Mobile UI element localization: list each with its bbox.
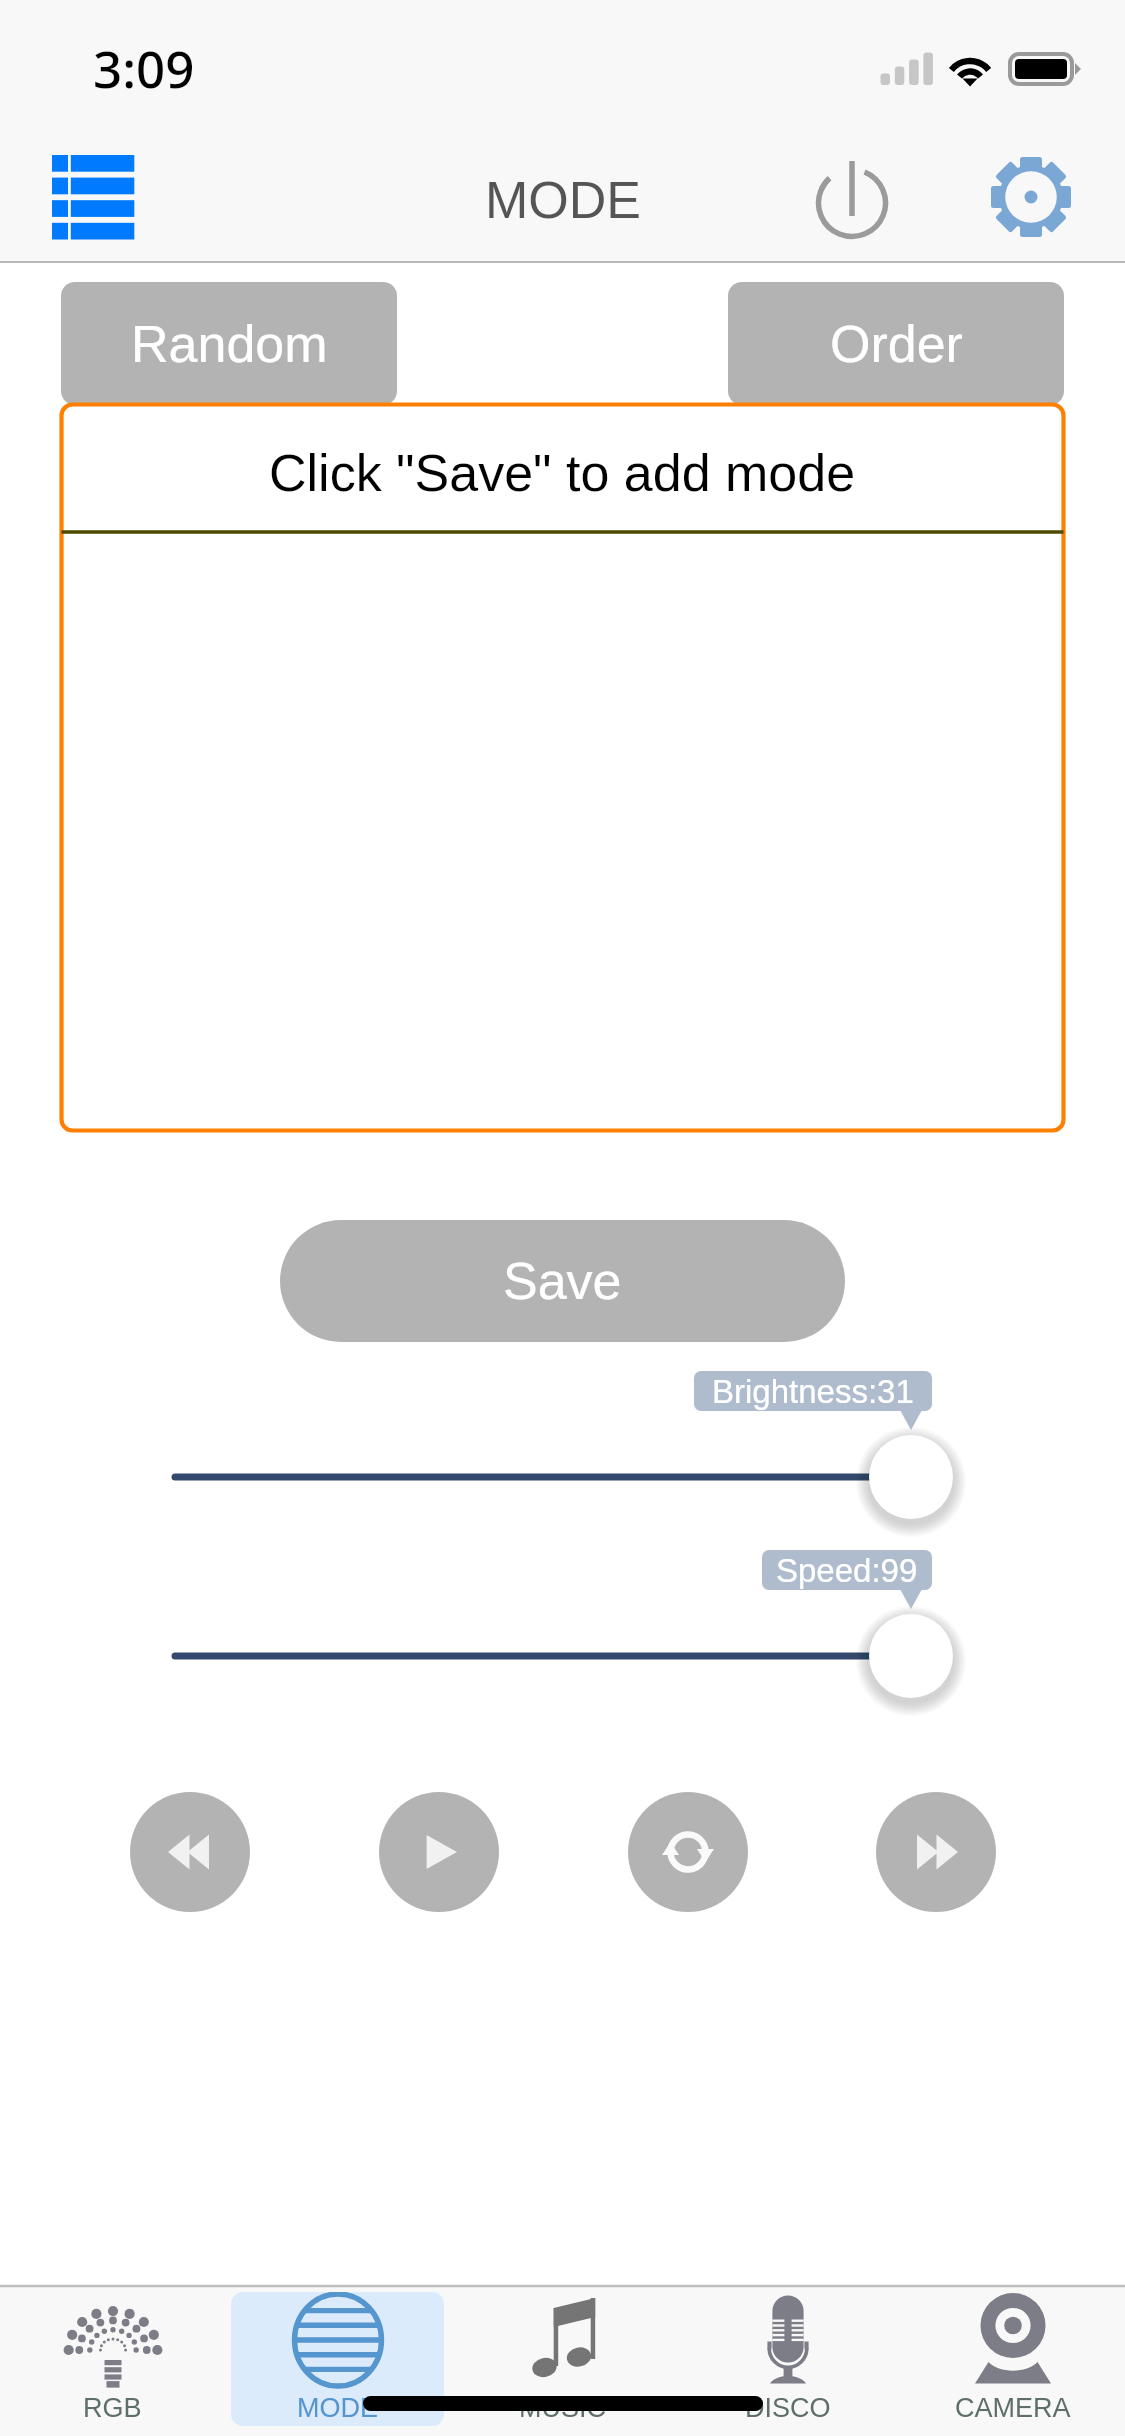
button[interactable]: Next: [876, 1792, 996, 1912]
staticText: CAMERA: [955, 2393, 1071, 2423]
button[interactable]: Play: [379, 1792, 499, 1912]
button[interactable]: CAMERA: [906, 2292, 1119, 2426]
button[interactable]: Settings: [971, 137, 1091, 257]
button[interactable]: Power: [792, 143, 912, 263]
button[interactable]: MUSIC: [456, 2292, 669, 2426]
button[interactable]: RGB: [6, 2292, 219, 2426]
button[interactable]: Menu: [22, 147, 152, 247]
button[interactable]: MODE: [231, 2292, 444, 2426]
staticText: RGB: [83, 2393, 142, 2423]
button[interactable]: Previous: [130, 1792, 250, 1912]
staticText: Speed:99: [776, 1552, 918, 1589]
button[interactable]: Brightness:31: [869, 1435, 953, 1519]
staticText: Random: [131, 315, 328, 373]
staticText: 3:09: [93, 33, 195, 102]
button[interactable]: Random: [61, 282, 397, 405]
button[interactable]: Order: [728, 282, 1064, 405]
staticText: MUSIC: [519, 2393, 606, 2423]
staticText: MODE: [297, 2393, 378, 2423]
staticText: Order: [830, 315, 963, 373]
staticText: DISCO: [745, 2393, 831, 2423]
staticText: Brightness:31: [712, 1373, 914, 1410]
button[interactable]: Speed:99: [869, 1614, 953, 1698]
button[interactable]: Save: [280, 1220, 845, 1342]
staticText: MODE: [485, 171, 641, 229]
staticText: Save: [503, 1252, 622, 1310]
button[interactable]: DISCO: [681, 2292, 894, 2426]
button[interactable]: Refresh: [628, 1792, 748, 1912]
staticText: Click "Save" to add mode: [269, 444, 856, 502]
